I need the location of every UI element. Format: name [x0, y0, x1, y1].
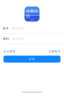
- staticText: 密码: [3, 37, 9, 40]
- staticText: 忘记密码: [3, 50, 15, 53]
- button[interactable]: 登录: [3, 56, 60, 63]
- staticText: 注册账号: [48, 50, 60, 53]
- staticText: JRSH: [30, 19, 33, 20]
- staticText: 账号: [3, 27, 9, 30]
- staticText: 输入账号: [12, 27, 24, 30]
- staticText: 登录: [29, 57, 35, 61]
- staticText: 金融生活: [26, 8, 38, 18]
- button[interactable]: 注册账号: [48, 50, 60, 53]
- staticText: 输入密码: [12, 37, 24, 40]
- button[interactable]: 忘记密码: [3, 50, 15, 53]
